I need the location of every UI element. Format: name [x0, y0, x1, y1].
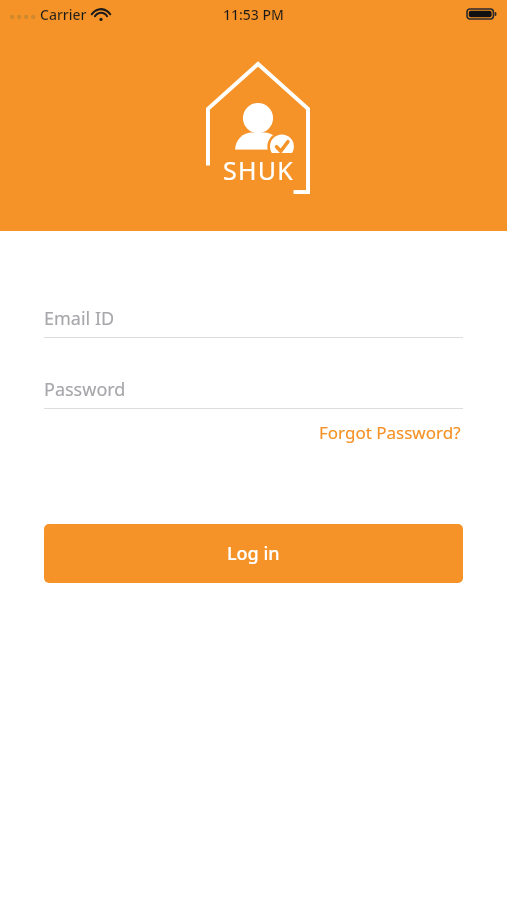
staticText: Email ID — [44, 306, 115, 331]
button[interactable]: Password — [44, 371, 463, 409]
staticText: Carrier — [40, 5, 87, 24]
button[interactable]: Log in — [44, 524, 463, 583]
staticText: Log in — [227, 541, 280, 566]
staticText: Forgot Password? — [319, 421, 461, 444]
button[interactable]: Forgot Password? — [317, 417, 463, 448]
staticText: Password — [44, 377, 126, 402]
staticText: 11:53 PM — [223, 5, 284, 24]
staticText: SHUK — [223, 153, 294, 187]
button[interactable]: Email ID — [44, 300, 463, 338]
